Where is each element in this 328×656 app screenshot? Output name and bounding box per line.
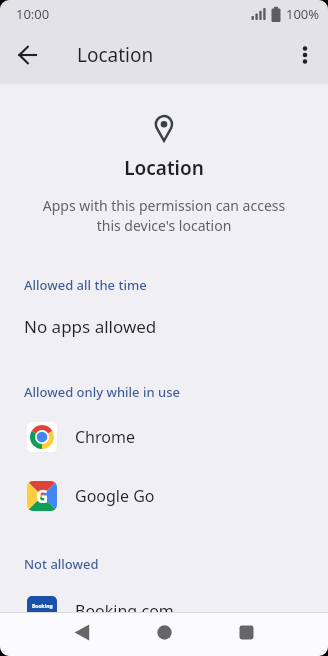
- staticText: Booking.com: [75, 600, 174, 622]
- button[interactable]: [0, 28, 56, 82]
- staticText: G: [36, 485, 49, 508]
- staticText: Booking: [32, 603, 53, 610]
- staticText: Location: [0, 155, 328, 181]
- staticText: Allowed only while in use: [24, 383, 180, 401]
- button[interactable]: Chrome: [0, 422, 328, 452]
- staticText: Google Go: [75, 485, 155, 507]
- button[interactable]: [58, 613, 106, 651]
- staticText: Not allowed: [24, 555, 99, 573]
- staticText: 100%: [286, 5, 320, 23]
- button[interactable]: G: [0, 481, 328, 511]
- staticText: Location: [77, 42, 154, 68]
- staticText: Chrome: [75, 426, 135, 448]
- staticText: Allowed all the time: [24, 276, 147, 294]
- button[interactable]: [222, 613, 270, 651]
- button[interactable]: [280, 28, 328, 82]
- button[interactable]: [140, 613, 188, 651]
- staticText: No apps allowed: [24, 315, 157, 338]
- staticText: 10:00: [16, 5, 50, 23]
- staticText: Apps with this permission can access thi…: [0, 196, 328, 235]
- button[interactable]: Booking: [0, 596, 328, 626]
